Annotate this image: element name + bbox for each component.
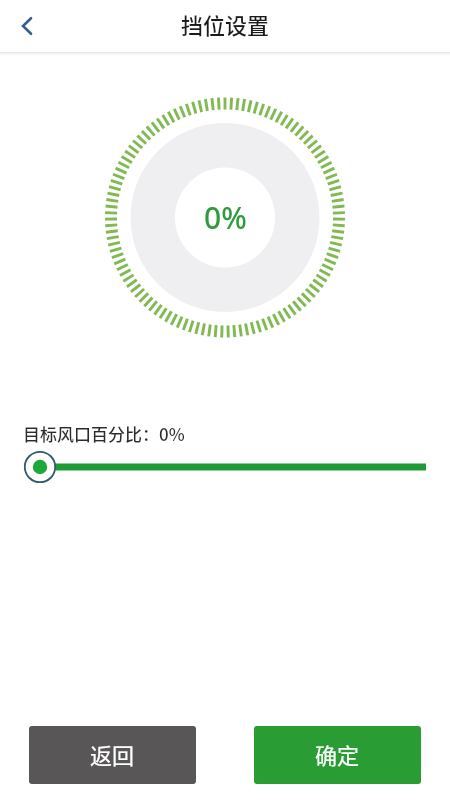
staticText: 挡位设置 [181,8,270,40]
staticText: 返回 [90,738,135,770]
staticText: 确定 [315,738,360,770]
staticText: 目标风口百分比：0% [23,421,185,446]
button[interactable]: 返回 [29,726,196,784]
button[interactable]: Target percentage slider [0,448,450,488]
button[interactable]: 确定 [254,726,421,784]
button[interactable]: Back [0,0,52,52]
staticText: 0% [204,197,247,238]
